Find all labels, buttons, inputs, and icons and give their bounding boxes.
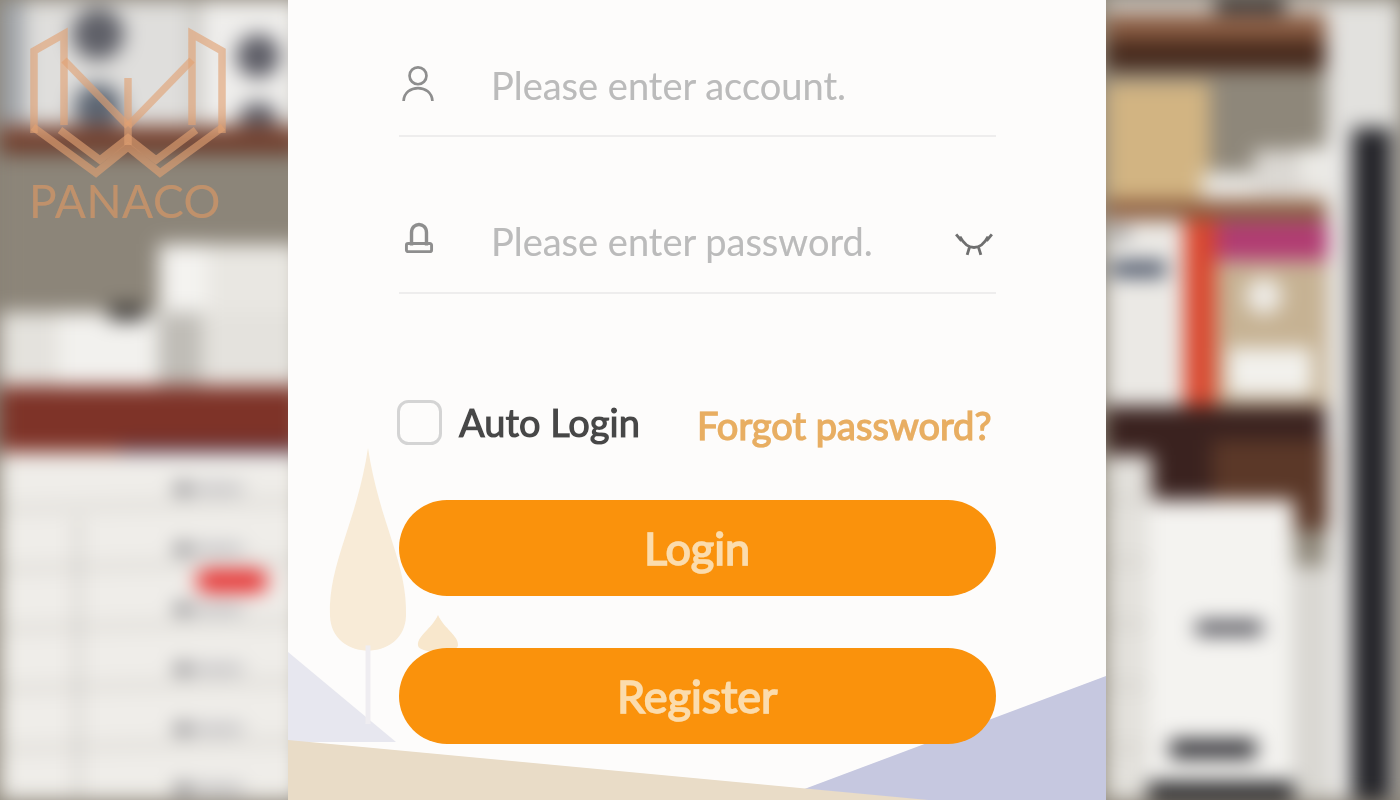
staticText: Please enter password. [491, 218, 873, 264]
staticText: Forgot password? [697, 402, 992, 448]
button[interactable]: Show password [938, 206, 1010, 278]
button[interactable]: Login [399, 500, 996, 596]
button[interactable]: Please enter password. [399, 196, 996, 292]
button[interactable]: Forgot password? [683, 388, 1006, 462]
staticText: Login [644, 521, 751, 575]
button[interactable]: Please enter account. [399, 40, 996, 135]
button[interactable]: Auto Login [385, 387, 652, 457]
staticText: Register [617, 669, 778, 723]
staticText: PANACO [29, 173, 221, 228]
staticText: Auto Login [459, 399, 640, 445]
button[interactable]: Register [399, 648, 996, 744]
staticText: Please enter account. [491, 62, 846, 108]
